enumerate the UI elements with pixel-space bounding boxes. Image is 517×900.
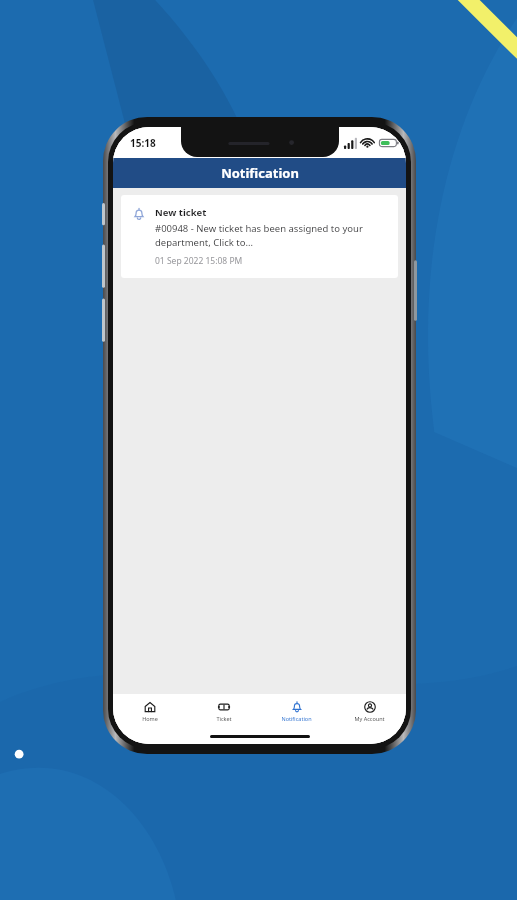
button[interactable]: Ticket [187,694,260,728]
button[interactable]: New ticket [121,195,398,278]
staticText: My Account [354,715,385,722]
button[interactable]: Notification [260,694,333,728]
staticText: New ticket [155,206,207,219]
staticText: Ticket [216,715,232,722]
staticText: Notification [281,715,312,722]
button[interactable]: Home [113,694,187,728]
staticText: #00948 - New ticket has been assigned to… [155,222,386,249]
button[interactable]: My Account [333,694,406,728]
staticText: Notification [221,164,299,182]
staticText: 15:18 [130,136,156,150]
staticText: Home [142,715,158,722]
staticText: 01 Sep 2022 15:08 PM [155,255,243,267]
